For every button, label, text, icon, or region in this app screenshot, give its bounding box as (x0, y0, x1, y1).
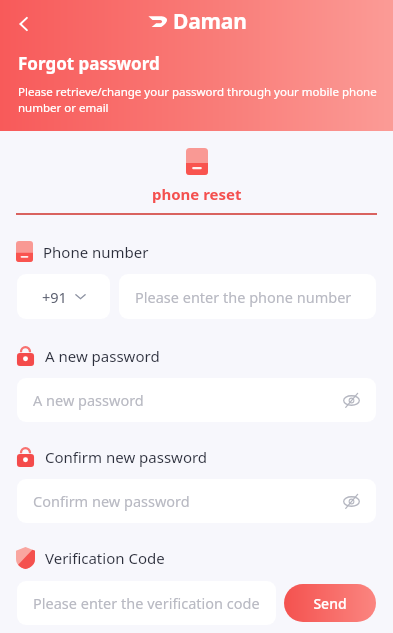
staticText: A new password (45, 346, 160, 366)
button[interactable]: Show password (336, 385, 366, 415)
button[interactable]: phone reset (0, 148, 393, 215)
staticText: A new password (33, 390, 144, 410)
button[interactable]: Show password (336, 486, 366, 516)
staticText: Confirm new password (45, 447, 208, 467)
button[interactable]: +91 (17, 274, 110, 319)
button[interactable]: Confirm new password (17, 479, 376, 523)
button[interactable]: Please enter the phone number (119, 274, 376, 319)
button[interactable]: Back (6, 6, 42, 42)
staticText: +91 (42, 287, 67, 307)
button[interactable]: Please enter the verification code (17, 581, 276, 625)
staticText: Daman (173, 7, 247, 36)
staticText: Phone number (43, 242, 149, 262)
staticText: Forgot password (18, 52, 160, 75)
staticText: Send (313, 594, 347, 613)
staticText: Verification Code (45, 548, 165, 568)
button[interactable]: Send (284, 584, 376, 622)
staticText: Please enter the verification code (33, 593, 260, 613)
staticText: Confirm new password (33, 491, 190, 511)
button[interactable]: A new password (17, 378, 376, 422)
staticText: Please enter the phone number (135, 287, 352, 307)
staticText: phone reset (152, 184, 242, 204)
staticText: Please retrieve/change your password thr… (18, 84, 377, 115)
